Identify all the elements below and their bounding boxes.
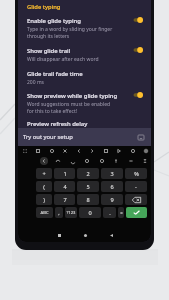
staticText: , — [58, 209, 60, 217]
button[interactable]: . — [103, 207, 116, 218]
button[interactable]: Show glide trail — [18, 43, 151, 66]
button[interactable]: Move cursor right — [87, 146, 96, 155]
button[interactable]: ) — [36, 194, 52, 205]
button[interactable]: Voice — [82, 156, 91, 165]
staticText: 1 — [63, 170, 67, 178]
button[interactable]: Emoji — [47, 146, 56, 155]
staticText: Preview refresh delay — [27, 120, 88, 128]
button[interactable]: Enable glide typing — [18, 13, 151, 43]
button[interactable]: 1 — [54, 168, 75, 179]
staticText: Glide typing — [27, 3, 61, 11]
staticText: = — [120, 210, 123, 216]
button[interactable]: 4 — [54, 181, 75, 192]
button[interactable]: Toggle Enable glide typing — [133, 16, 145, 24]
button[interactable]: 6 — [101, 181, 123, 192]
staticText: Will disappear after each word — [27, 56, 99, 63]
button[interactable]: Select — [101, 146, 110, 155]
button[interactable]: Copy — [114, 146, 123, 155]
button[interactable]: Back — [104, 228, 118, 242]
button[interactable]: One-handed — [126, 156, 135, 165]
staticText: Show preview while glide typing — [27, 92, 118, 100]
staticText: ( — [43, 183, 45, 191]
button[interactable]: Sticker — [97, 156, 106, 165]
staticText: 6 — [110, 183, 114, 191]
staticText: - — [135, 183, 137, 191]
button[interactable]: Home — [78, 228, 92, 242]
staticText: Enable glide typing — [27, 17, 81, 25]
button[interactable]: Preview refresh delay — [18, 116, 151, 128]
button[interactable]: Paste — [128, 146, 137, 155]
button[interactable]: = — [118, 207, 124, 218]
button[interactable]: Expand toolbar — [20, 146, 29, 155]
button[interactable]: Toggle Show glide trail — [133, 46, 145, 54]
button[interactable]: % — [125, 168, 147, 179]
button[interactable]: Redo — [68, 156, 77, 165]
button[interactable]: ABC — [36, 207, 53, 218]
staticText: Type in a word by sliding your finger th… — [27, 26, 113, 39]
staticText: 3 — [110, 170, 114, 178]
button[interactable]: Show preview while glide typing — [18, 88, 151, 116]
button[interactable]: 7 — [54, 194, 75, 205]
staticText: + — [42, 170, 46, 178]
button[interactable]: Settings — [141, 146, 150, 155]
button[interactable]: 0 — [79, 207, 101, 218]
button[interactable]: , — [55, 207, 63, 218]
staticText: 4 — [63, 183, 67, 191]
staticText: Glide trail fade time — [27, 70, 83, 78]
button[interactable]: - — [125, 181, 147, 192]
staticText: Show glide trail — [27, 47, 71, 55]
staticText: Try out your setup — [23, 133, 73, 141]
button[interactable]: More — [140, 156, 149, 165]
staticText: ) — [43, 196, 45, 204]
button[interactable]: Mic — [111, 156, 120, 165]
staticText: % — [134, 170, 139, 178]
button[interactable]: 2 — [77, 168, 99, 179]
button[interactable]: Toggle Show preview while glide typing — [133, 91, 145, 99]
staticText: . — [109, 209, 111, 217]
button[interactable]: ?123 — [65, 207, 77, 218]
button[interactable]: Undo — [53, 156, 62, 165]
button[interactable]: Keyboard — [137, 133, 145, 141]
staticText: 8 — [86, 196, 90, 204]
staticText: 0 — [88, 209, 92, 217]
staticText: 2 — [86, 170, 90, 178]
button[interactable]: ( — [36, 181, 52, 192]
staticText: 5 — [86, 183, 90, 191]
staticText: ABC — [40, 210, 49, 216]
button[interactable]: 8 — [77, 194, 99, 205]
button[interactable]: 3 — [101, 168, 123, 179]
button[interactable]: Back — [39, 156, 48, 165]
button[interactable]: Enter — [126, 207, 147, 218]
button[interactable]: Backspace — [125, 194, 147, 205]
button[interactable]: Try out your setup — [18, 128, 151, 146]
button[interactable]: + — [36, 168, 52, 179]
button[interactable]: Clipboard — [33, 146, 42, 155]
button[interactable]: Close — [60, 146, 69, 155]
button[interactable]: Glide trail fade time — [18, 66, 151, 88]
button[interactable]: Recents — [52, 228, 66, 242]
button[interactable]: 5 — [77, 181, 99, 192]
staticText: 9 — [110, 196, 114, 204]
staticText: 7 — [63, 196, 67, 204]
staticText: 200 ms — [27, 79, 44, 86]
button[interactable]: Move cursor left — [74, 146, 83, 155]
button[interactable]: 9 — [101, 194, 123, 205]
staticText: ?123 — [66, 210, 76, 216]
staticText: Word suggestions must be enabled for thi… — [27, 101, 111, 114]
